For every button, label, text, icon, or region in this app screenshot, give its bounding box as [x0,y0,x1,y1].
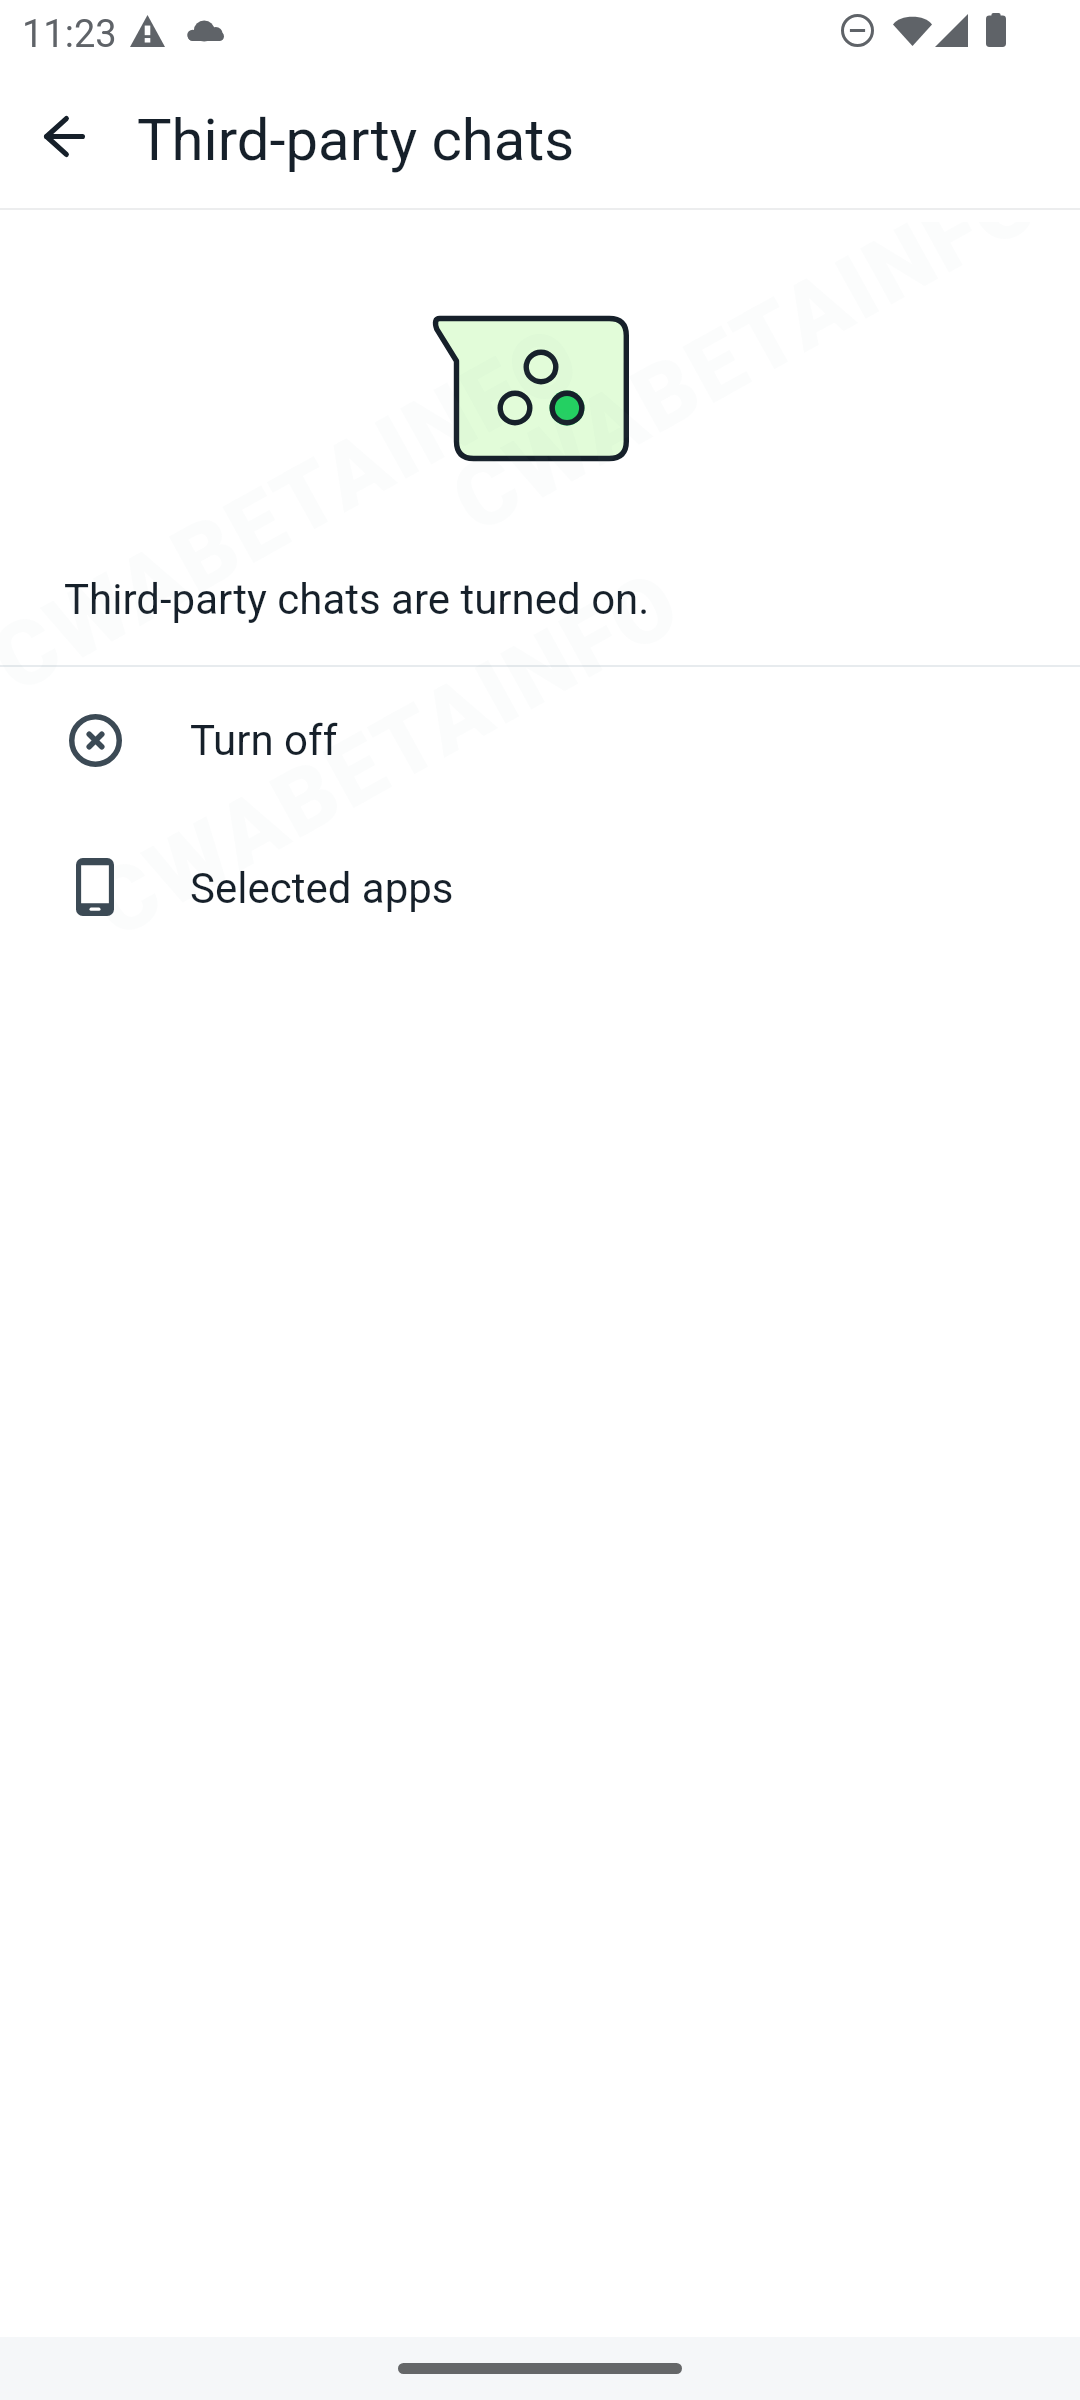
staticText: Selected apps [190,864,454,913]
staticText: Third-party chats [137,106,575,174]
staticText: CWABETAINFO [75,550,698,957]
staticText: Third-party chats are turned on. [64,575,650,624]
staticText: Turn off [190,716,338,765]
button[interactable]: Selected apps [0,814,1080,962]
button[interactable]: Turn off [0,666,1080,814]
staticText: 11:23 [22,12,117,57]
button[interactable]: Back [16,88,112,184]
staticText: CWABETAINFO [0,305,598,714]
staticText: CWABETAINFO [435,222,1058,554]
